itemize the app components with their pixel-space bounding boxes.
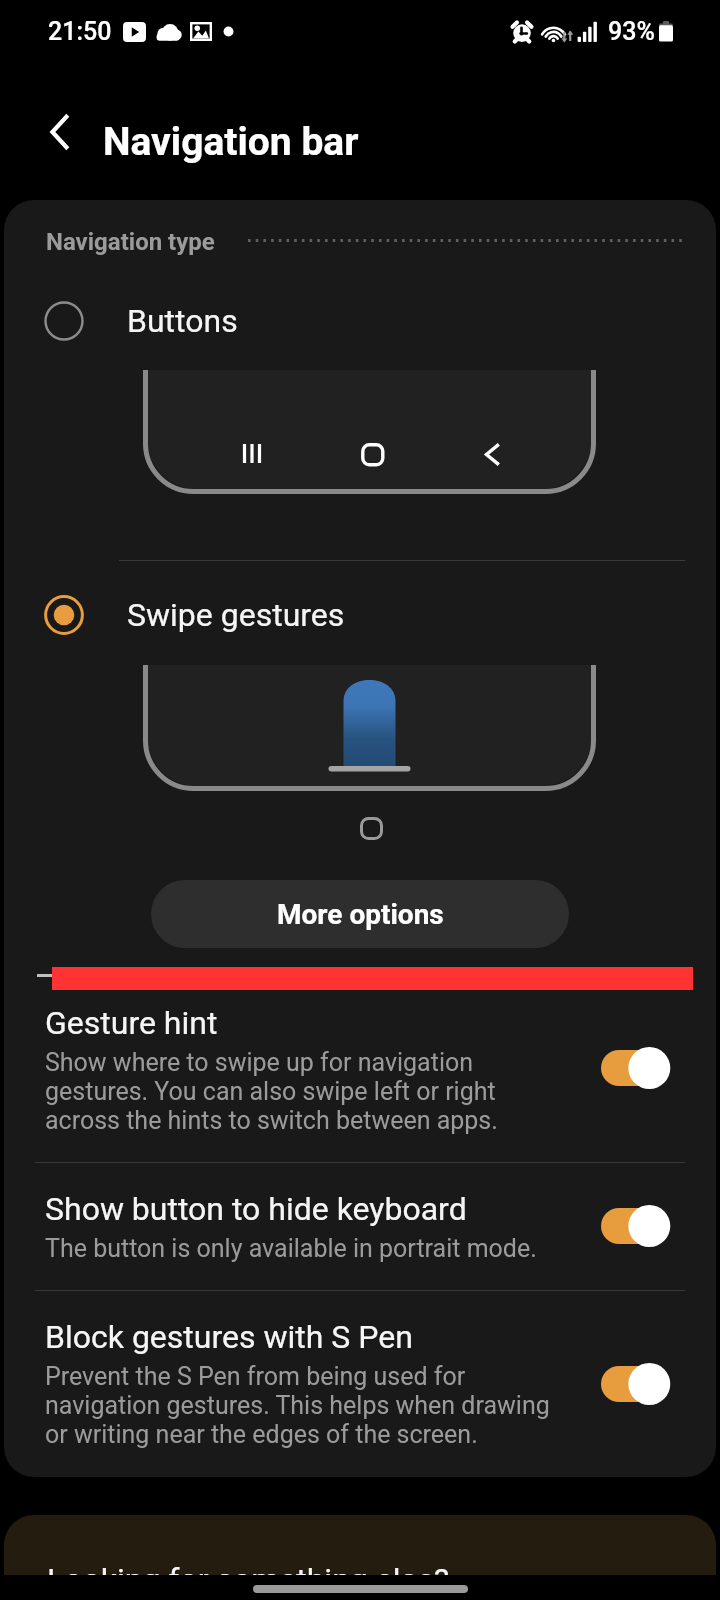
staticText: 93% xyxy=(608,17,655,46)
button[interactable]: More options xyxy=(151,880,569,948)
staticText: Gesture hint xyxy=(45,1004,218,1042)
button[interactable]: Gesture hint toggle xyxy=(590,1037,682,1097)
staticText: Show where to swipe up for navigation ge… xyxy=(45,1048,565,1135)
staticText: Block gestures with S Pen xyxy=(45,1318,413,1356)
staticText: Prevent the S Pen from being used for na… xyxy=(45,1362,565,1449)
button[interactable]: Looking for something else? xyxy=(4,1515,716,1600)
staticText: Swipe gestures xyxy=(127,596,345,634)
staticText: Show button to hide keyboard xyxy=(45,1190,467,1228)
staticText: Navigation bar xyxy=(103,119,359,165)
button[interactable]: Navigate up xyxy=(20,92,100,172)
staticText: The button is only available in portrait… xyxy=(45,1234,537,1263)
staticText: Buttons xyxy=(127,302,238,340)
staticText: Navigation type xyxy=(46,228,215,256)
button[interactable]: Swipe gestures xyxy=(0,587,720,643)
button[interactable]: Buttons xyxy=(0,293,720,349)
staticText: Looking for something else? xyxy=(47,1561,450,1599)
button[interactable]: Block gestures with S Pen toggle xyxy=(590,1353,682,1413)
staticText: 21:50 xyxy=(48,17,112,46)
staticText: More options xyxy=(277,898,444,931)
button[interactable]: Show button to hide keyboard toggle xyxy=(590,1195,682,1255)
